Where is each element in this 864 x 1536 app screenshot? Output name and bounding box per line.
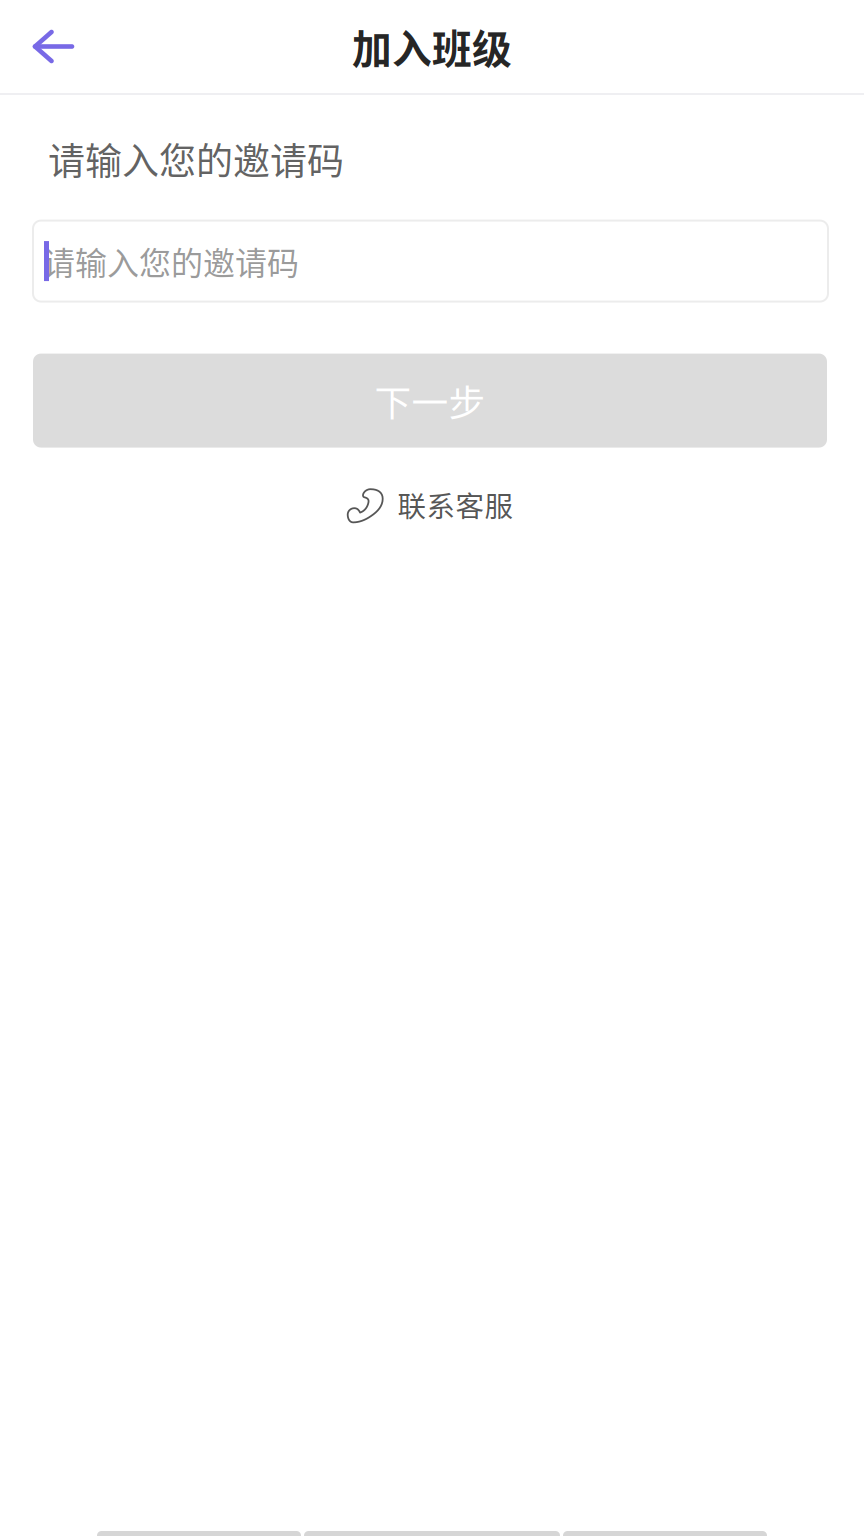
button[interactable]: 请输入您的邀请码 bbox=[33, 221, 828, 302]
button[interactable]: Back bbox=[0, 0, 150, 93]
staticText: 请输入您的邀请码 bbox=[48, 132, 344, 186]
staticText: 请输入您的邀请码 bbox=[43, 238, 299, 284]
staticText: 加入班级 bbox=[352, 18, 512, 75]
staticText: 联系客服 bbox=[397, 484, 513, 525]
button[interactable]: 联系客服 bbox=[33, 481, 827, 529]
staticText: 下一步 bbox=[374, 374, 485, 427]
button[interactable]: 下一步 bbox=[33, 354, 827, 448]
